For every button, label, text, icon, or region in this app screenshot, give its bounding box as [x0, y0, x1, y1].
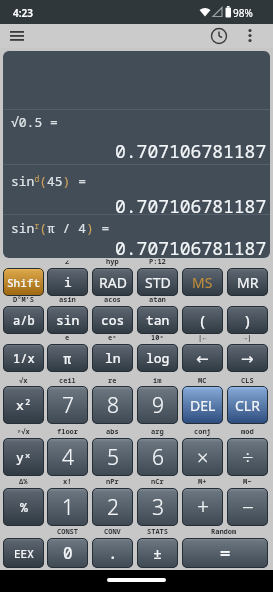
staticText: 0.707106781187 [115, 194, 267, 214]
staticText: 8 [107, 391, 119, 420]
button[interactable]: tan [137, 306, 178, 334]
button[interactable]: 6 [137, 438, 178, 476]
staticText: EEX [14, 546, 34, 561]
staticText: M− [243, 477, 252, 487]
button[interactable]: ± [137, 538, 178, 568]
staticText: 98% [233, 6, 253, 20]
staticText: yˣ [16, 448, 32, 466]
staticText: im [153, 376, 162, 386]
staticText: acos [104, 295, 121, 305]
button[interactable]: MR [227, 268, 268, 296]
staticText: RAD [99, 273, 127, 292]
button[interactable]: 4 [47, 438, 88, 476]
button[interactable] [240, 26, 260, 46]
button[interactable]: 2 [92, 488, 133, 526]
staticText: CONST [57, 527, 78, 537]
staticText: 9 [152, 391, 164, 420]
staticText: ← [196, 350, 209, 367]
staticText: MC [198, 376, 207, 386]
staticText: hyp [106, 257, 119, 267]
staticText: Random [211, 527, 237, 537]
staticText: MR [237, 273, 259, 292]
staticText: eˣ [108, 333, 117, 343]
button[interactable]: a/b [3, 306, 44, 334]
staticText: ± [153, 543, 163, 563]
button[interactable]: 0 [47, 538, 88, 568]
staticText: 6 [152, 443, 164, 472]
staticText: e [65, 333, 70, 343]
staticText: 5 [107, 443, 119, 472]
staticText: |← [198, 333, 207, 343]
button[interactable]: 7 [47, 386, 88, 424]
staticText: CLR [235, 396, 260, 415]
button[interactable] [4, 26, 30, 46]
button[interactable]: ) [227, 306, 268, 334]
staticText: ∠ [65, 257, 70, 267]
button[interactable]: MS [182, 268, 223, 296]
staticText: ) [243, 310, 253, 330]
button[interactable]: Shift [3, 268, 44, 296]
button[interactable]: 3 [137, 488, 178, 526]
button[interactable]: EEX [3, 538, 44, 568]
button[interactable]: ← [182, 344, 223, 372]
staticText: re [108, 376, 117, 386]
button[interactable]: 1/x [3, 344, 44, 372]
staticText: STD [145, 273, 171, 292]
staticText: sin [56, 311, 80, 329]
button[interactable]: × [182, 438, 223, 476]
staticText: DEL [190, 396, 216, 415]
button[interactable]: cos [92, 306, 133, 334]
staticText: Δ% [19, 477, 28, 487]
staticText: atan [149, 295, 166, 305]
button[interactable]: ÷ [227, 438, 268, 476]
button[interactable]: STD [137, 268, 178, 296]
staticText: CONV [104, 527, 121, 537]
button[interactable]: ln [92, 344, 133, 372]
button[interactable]: i [47, 268, 88, 296]
staticText: ln [105, 349, 121, 367]
button[interactable] [208, 26, 230, 46]
button[interactable]: 8 [92, 386, 133, 424]
button[interactable]: log [137, 344, 178, 372]
staticText: mod [241, 427, 254, 437]
staticText: 1 [62, 493, 74, 522]
button[interactable]: x² [3, 386, 44, 424]
button[interactable]: ( [182, 306, 223, 334]
button[interactable]: π [47, 344, 88, 372]
staticText: a/b [13, 312, 35, 328]
button[interactable]: yˣ [3, 438, 44, 476]
button[interactable]: 1 [47, 488, 88, 526]
staticText: x! [63, 477, 72, 487]
staticText: nCr [151, 477, 164, 487]
button[interactable]: . [92, 538, 133, 568]
staticText: ʸ√x [17, 427, 30, 437]
staticText: MS [192, 273, 213, 292]
staticText: ÷ [242, 444, 254, 471]
staticText: x² [16, 396, 32, 414]
button[interactable]: + [182, 488, 223, 526]
staticText: . [108, 542, 118, 564]
staticText: abs [106, 427, 119, 437]
staticText: log [146, 349, 170, 367]
staticText: 7 [62, 391, 74, 420]
button[interactable]: % [3, 488, 44, 526]
button[interactable]: − [227, 488, 268, 526]
staticText: 0.707106781187 [115, 139, 267, 159]
button[interactable]: CLR [227, 386, 268, 424]
button[interactable]: RAD [92, 268, 133, 296]
staticText: + [197, 493, 209, 522]
button[interactable]: → [227, 344, 268, 372]
staticText: nPr [106, 477, 119, 487]
staticText: π [63, 349, 72, 368]
button[interactable]: 5 [92, 438, 133, 476]
staticText: × [197, 444, 209, 471]
staticText: M+ [198, 477, 207, 487]
staticText: √x [19, 376, 28, 386]
button[interactable]: 9 [137, 386, 178, 424]
button[interactable]: sin [47, 306, 88, 334]
button[interactable]: = [182, 538, 268, 568]
staticText: i [64, 273, 72, 291]
staticText: arg [151, 427, 164, 437]
button[interactable]: DEL [182, 386, 223, 424]
staticText: D°M'S [13, 295, 34, 305]
